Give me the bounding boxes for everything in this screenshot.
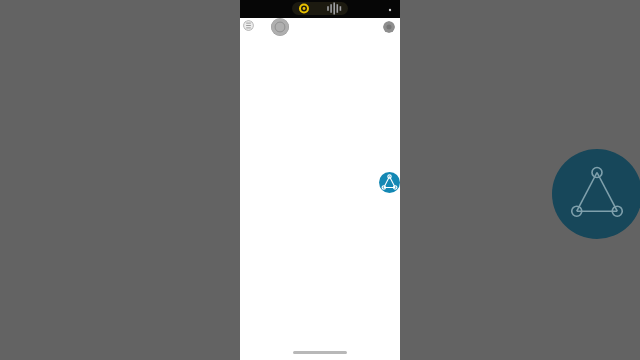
button[interactable]: App logo: [552, 149, 640, 239]
button[interactable]: Menu: [243, 20, 254, 31]
button[interactable]: Profile: [271, 18, 289, 36]
button[interactable]: Open app: [379, 172, 400, 193]
button[interactable]: Settings: [383, 21, 395, 33]
